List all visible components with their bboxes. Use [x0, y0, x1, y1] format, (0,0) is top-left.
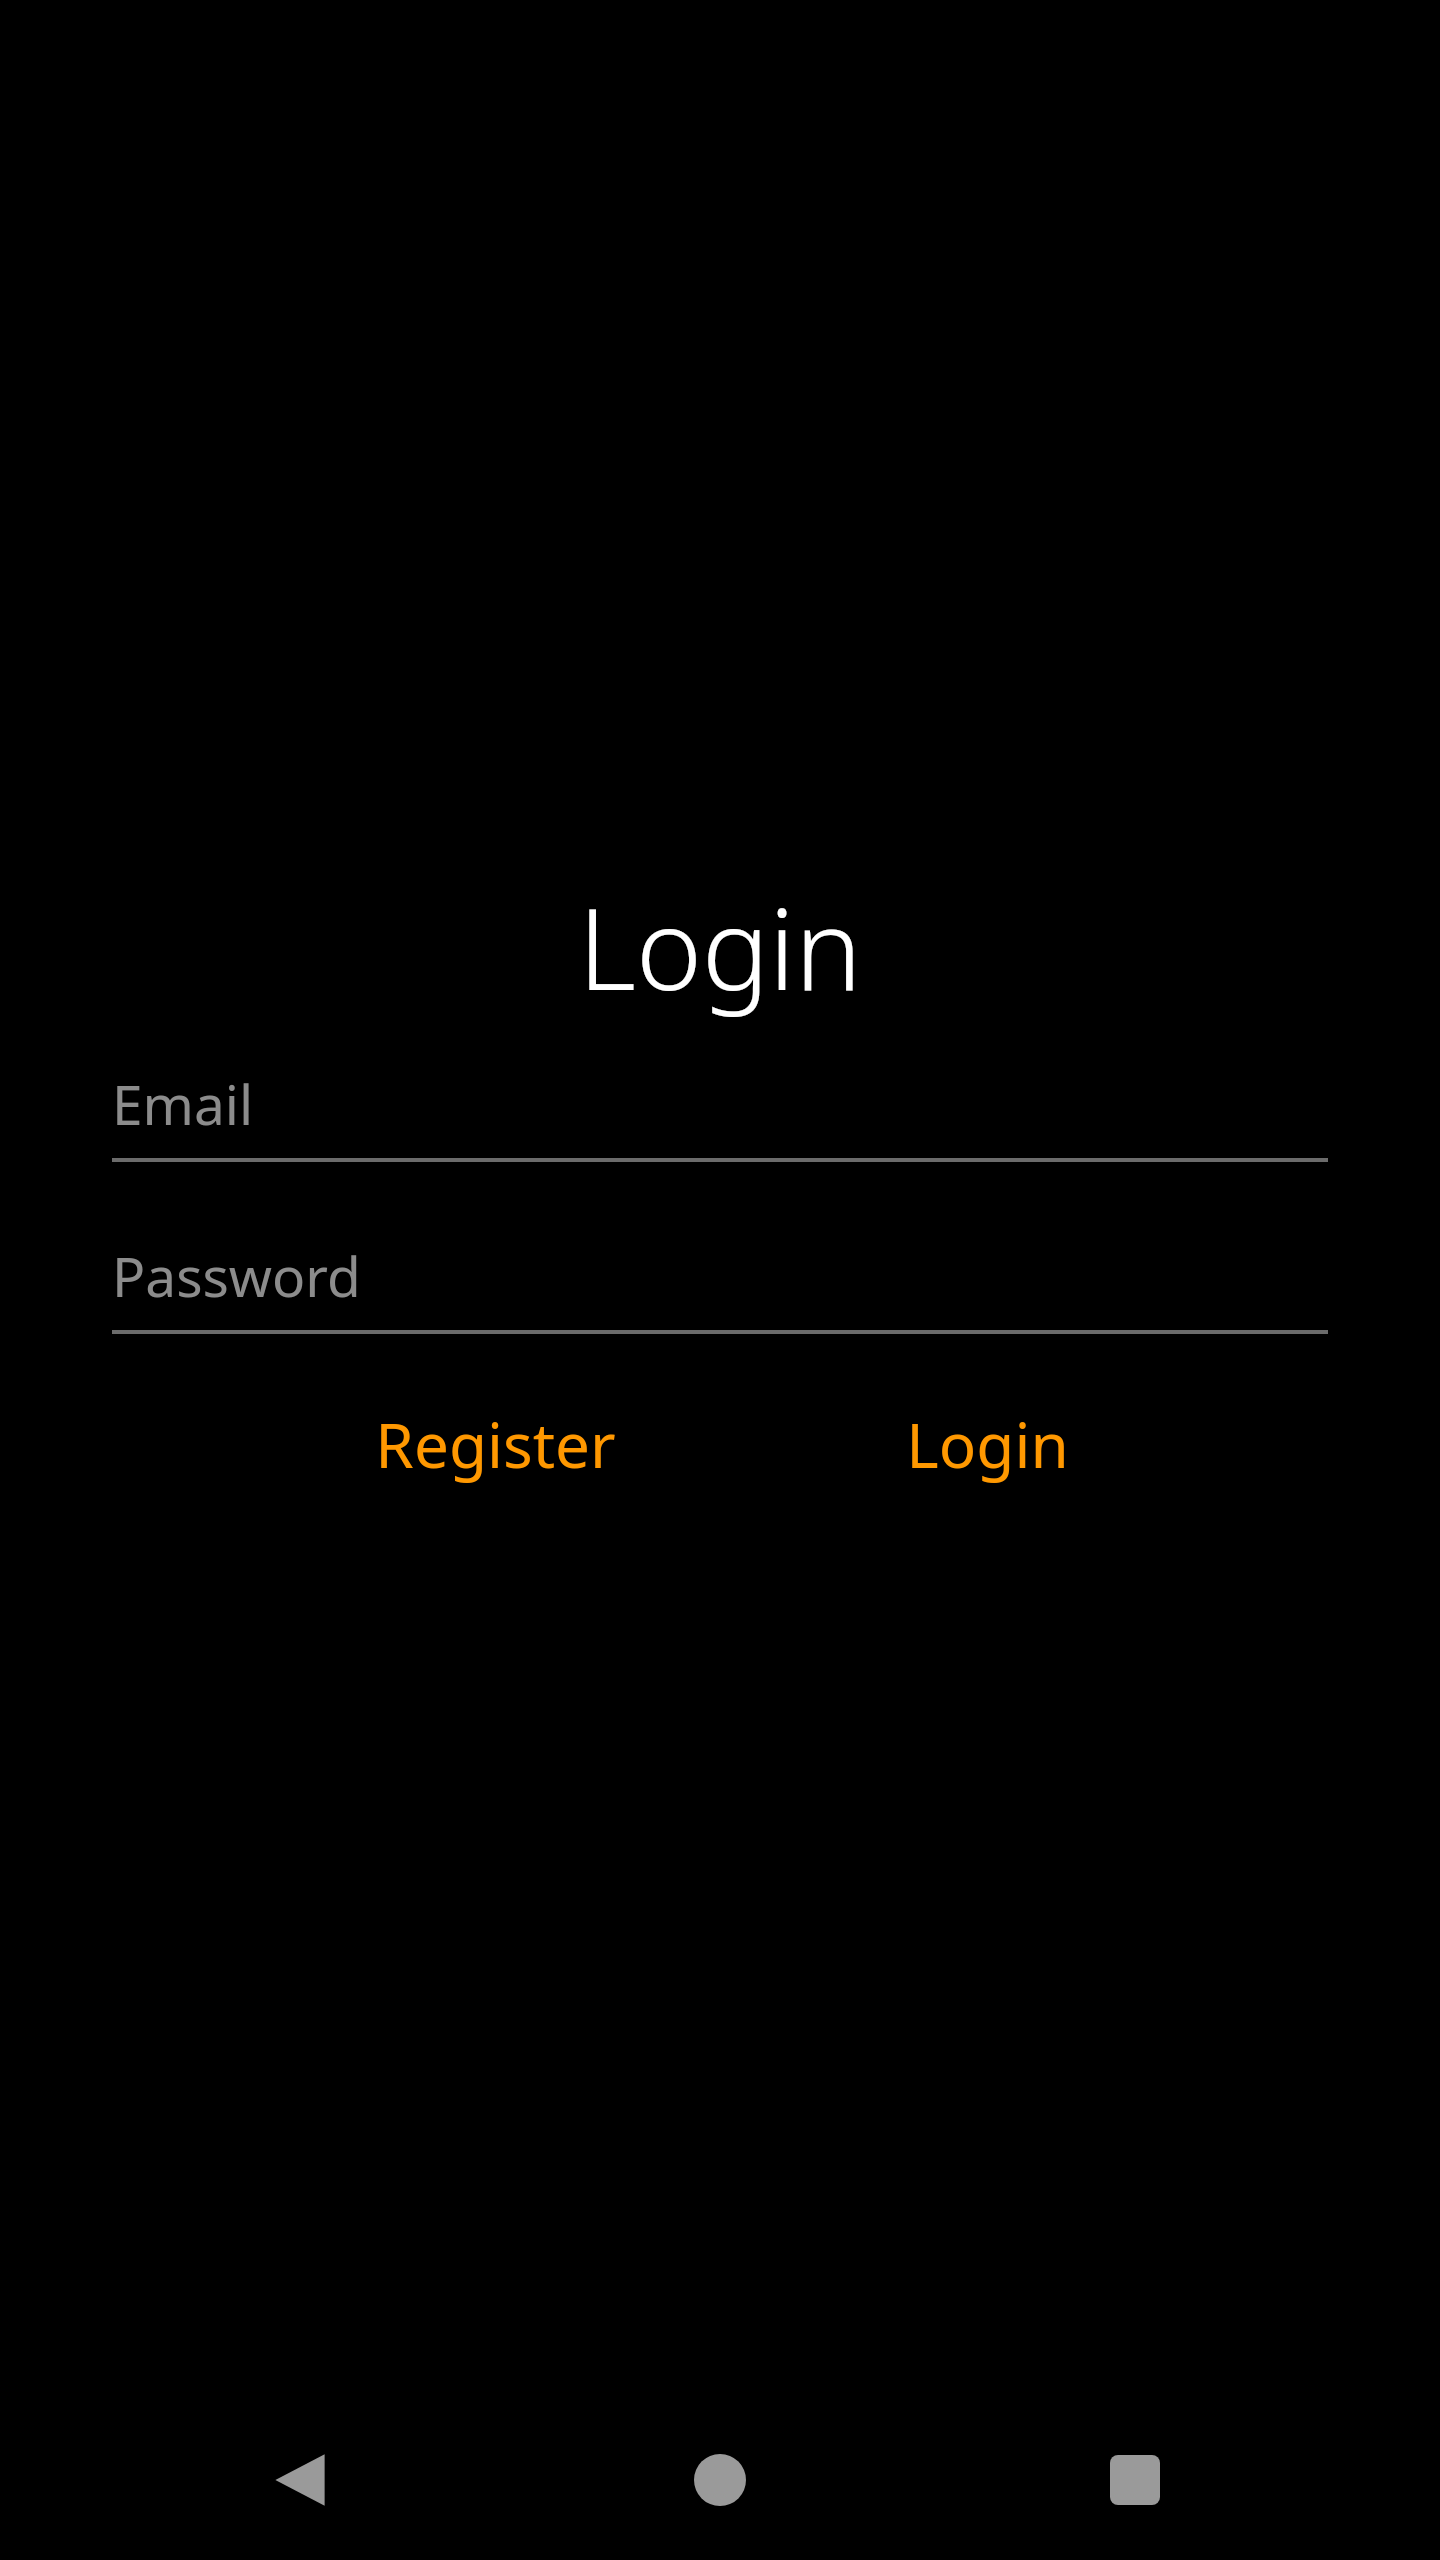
button[interactable]: Login — [837, 1394, 1137, 1494]
button[interactable]: Recent apps — [1075, 2420, 1195, 2540]
button[interactable]: Email — [112, 1053, 1328, 1162]
staticText: Login — [0, 870, 1440, 1023]
staticText: Password — [112, 1238, 361, 1313]
staticText: Register — [375, 1402, 616, 1486]
staticText: Email — [112, 1066, 254, 1141]
button[interactable]: Register — [345, 1394, 645, 1494]
button[interactable]: Home — [660, 2420, 780, 2540]
button[interactable]: Back — [240, 2420, 360, 2540]
button[interactable]: Password — [112, 1225, 1328, 1334]
staticText: Login — [906, 1402, 1069, 1486]
